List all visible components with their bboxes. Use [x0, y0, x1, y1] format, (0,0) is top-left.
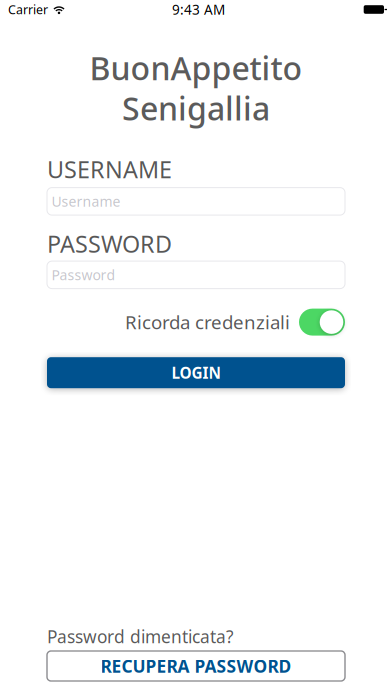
staticText: PASSWORD [47, 228, 172, 260]
staticText: Password [51, 265, 115, 284]
staticText: LOGIN [171, 362, 220, 383]
staticText: RECUPERA PASSWORD [100, 654, 291, 678]
staticText: Senigallia [122, 86, 270, 130]
button[interactable]: Ricorda credenziali [47, 309, 345, 336]
staticText: Username [51, 192, 120, 211]
button[interactable]: RECUPERA PASSWORD [47, 651, 345, 681]
staticText: Password dimenticata? [47, 625, 234, 648]
staticText: USERNAME [47, 153, 172, 185]
staticText: Carrier [8, 1, 48, 18]
staticText: BuonAppetito [89, 46, 302, 90]
staticText: Ricorda credenziali [125, 309, 290, 335]
button[interactable]: LOGIN [47, 357, 345, 388]
staticText: 9:43 AM [172, 0, 225, 19]
